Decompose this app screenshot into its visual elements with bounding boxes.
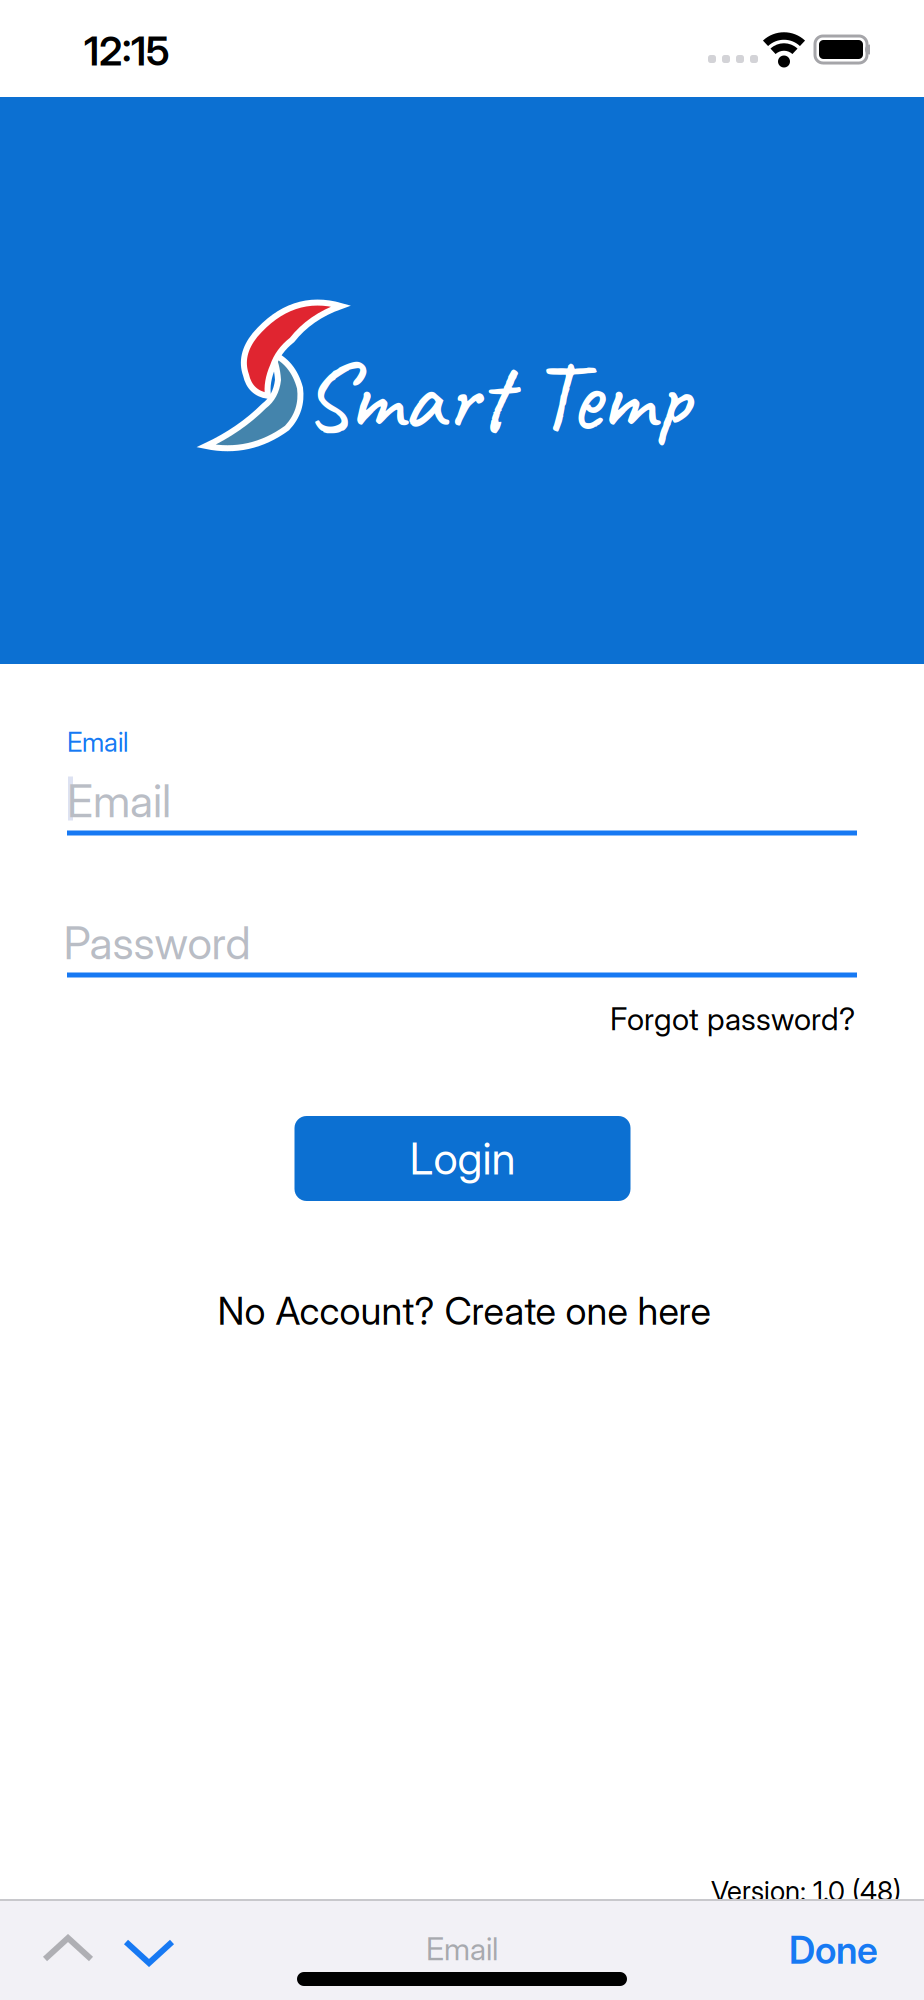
staticText: No Account? Create one here (217, 1288, 710, 1334)
button[interactable]: Done (789, 1927, 878, 1973)
button[interactable]: Next field (119, 1932, 179, 1972)
button[interactable]: Previous field (38, 1928, 98, 1968)
staticText: Version: 1.0 (48) (711, 1874, 901, 1908)
staticText: Email (67, 774, 171, 828)
button[interactable]: Password (67, 905, 857, 980)
staticText: Forgot password? (610, 1000, 855, 1038)
button[interactable]: Forgot password? (610, 1000, 855, 1038)
button[interactable]: Login (294, 1116, 630, 1201)
staticText: Done (789, 1927, 878, 1973)
staticText: Smart Temp (302, 337, 689, 457)
staticText: Login (409, 1132, 515, 1185)
button[interactable]: No Account? Create one here (217, 1288, 710, 1334)
staticText: 12:15 (84, 27, 170, 75)
button[interactable]: Email (67, 770, 857, 840)
staticText: Password (63, 916, 250, 970)
staticText: Email (426, 1930, 498, 1968)
staticText: Email (67, 726, 128, 758)
